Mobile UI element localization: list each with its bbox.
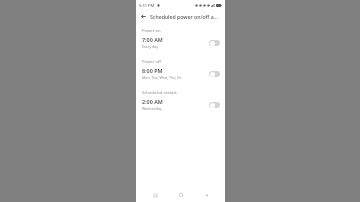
- staticText: Power off: [142, 59, 161, 65]
- staticText: Mon, Tue, Wed, Thu, Fri: [142, 75, 182, 80]
- staticText: Every day: [142, 44, 159, 49]
- staticText: Scheduled power on/off and res…: [150, 13, 221, 20]
- button[interactable]: Toggle schedule: [209, 40, 220, 46]
- staticText: 8:00 PM: [142, 67, 163, 74]
- staticText: Scheduled restart: [142, 90, 177, 96]
- staticText: 7:00 AM: [142, 36, 163, 43]
- button[interactable]: 2:00 AM: [136, 97, 225, 112]
- staticText: 5:51 PM: [139, 3, 155, 8]
- button[interactable]: Toggle schedule: [209, 102, 220, 108]
- staticText: 2:00 AM: [142, 98, 163, 105]
- button[interactable]: 8:00 PM: [136, 66, 225, 81]
- button[interactable]: Home: [175, 189, 187, 201]
- staticText: Wednesday: [142, 106, 162, 111]
- button[interactable]: 7:00 AM: [136, 35, 225, 50]
- button[interactable]: Recent apps: [149, 189, 161, 201]
- button[interactable]: Toggle schedule: [209, 71, 220, 77]
- staticText: Power on: [142, 28, 161, 34]
- button[interactable]: Back: [200, 189, 212, 201]
- button[interactable]: Back: [139, 12, 148, 21]
